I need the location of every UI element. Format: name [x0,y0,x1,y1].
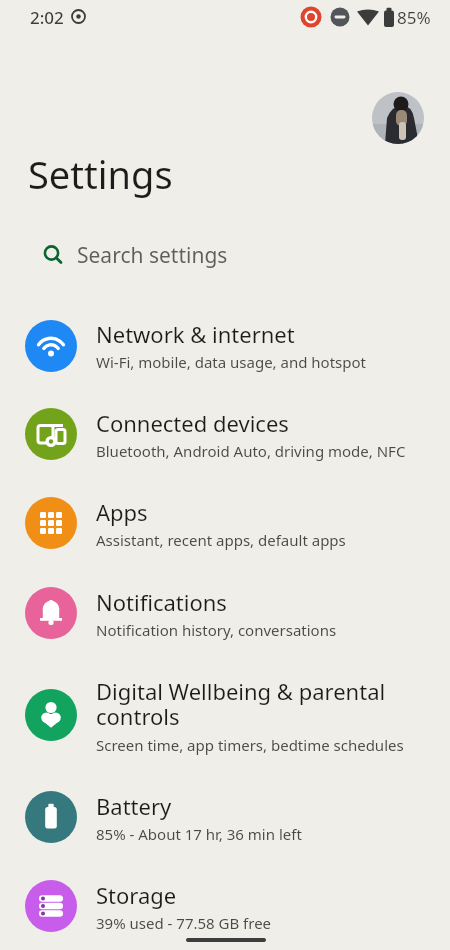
staticText: 2:02 [30,6,64,29]
button[interactable]: Search settings [26,234,426,276]
button[interactable]: Storage [0,862,450,950]
button[interactable] [372,92,424,144]
staticText: Battery [96,791,172,821]
staticText: Network & internet [96,319,295,349]
button[interactable]: Connected devices [0,390,450,478]
staticText: Digital Wellbeing & parental controls [96,676,386,732]
staticText: Notification history, conversations [96,620,337,640]
staticText: Settings [28,148,173,200]
staticText: Bluetooth, Android Auto, driving mode, N… [96,441,406,461]
button[interactable]: Digital Wellbeing & parental controls [0,658,450,772]
staticText: 85% [397,6,431,29]
staticText: Connected devices [96,408,289,438]
button[interactable]: Notifications [0,568,450,658]
staticText: Assistant, recent apps, default apps [96,530,346,550]
staticText: Storage [96,880,177,910]
staticText: Notifications [96,587,227,617]
staticText: Screen time, app timers, bedtime schedul… [96,735,404,755]
button[interactable]: Network & internet [0,301,450,390]
button[interactable]: Battery [0,772,450,862]
staticText: Apps [96,497,148,527]
button[interactable]: Apps [0,478,450,568]
staticText: Search settings [77,241,228,270]
staticText: 39% used - 77.58 GB free [96,913,272,933]
staticText: 85% - About 17 hr, 36 min left [96,824,302,844]
staticText: Wi-Fi, mobile, data usage, and hotspot [96,352,366,372]
